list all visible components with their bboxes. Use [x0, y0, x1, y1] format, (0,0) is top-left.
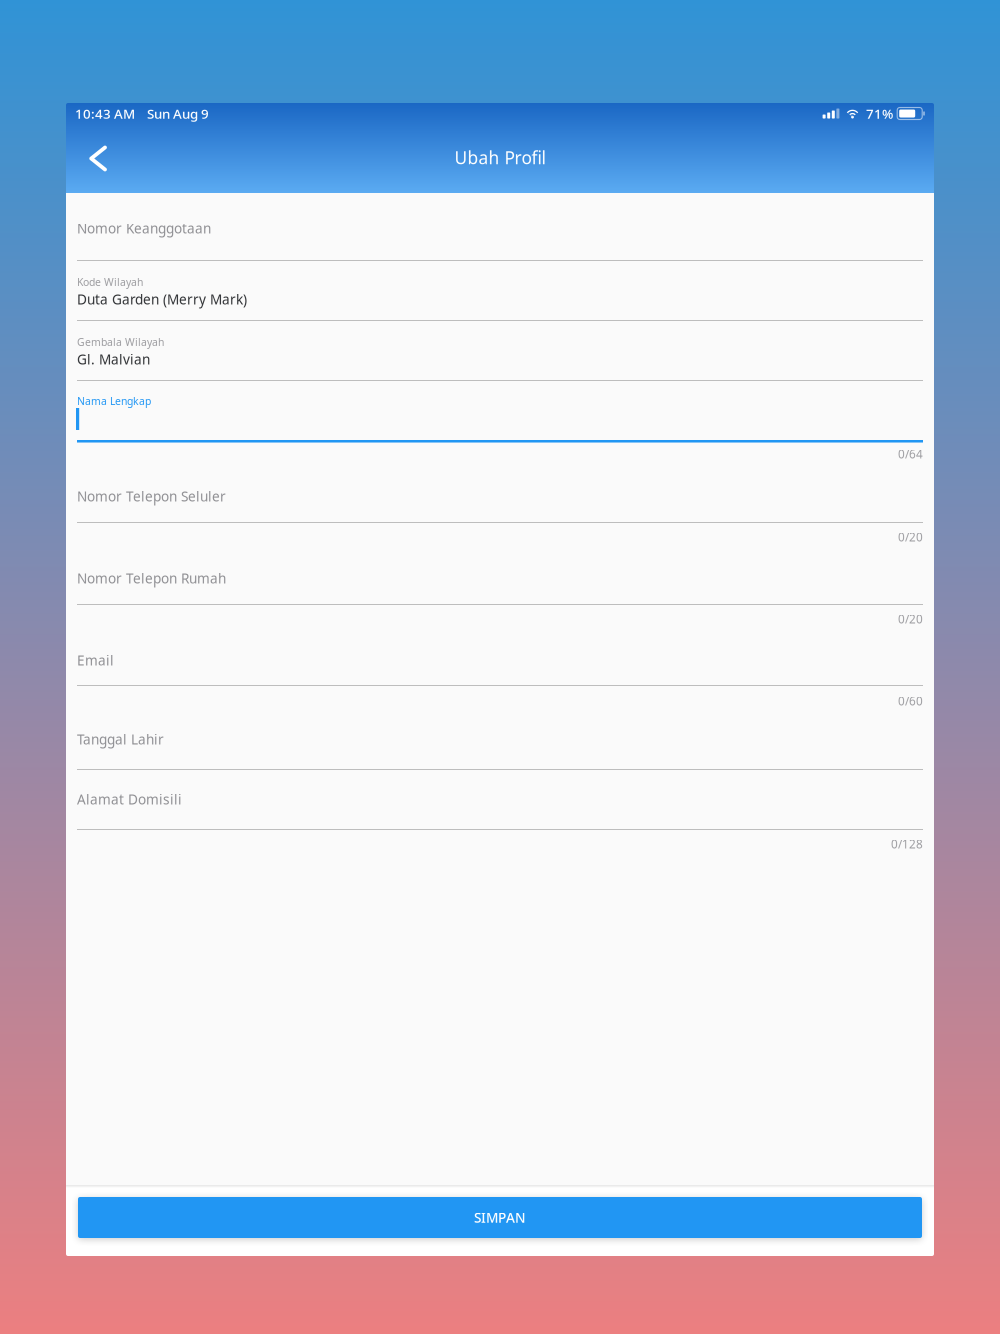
staticText: Nomor Telepon Rumah	[77, 569, 226, 587]
button[interactable]: Nomor Telepon Seluler	[66, 463, 934, 545]
staticText: 0/20	[898, 611, 923, 627]
button[interactable]: SIMPAN	[78, 1197, 922, 1238]
staticText: Email	[77, 651, 114, 669]
staticText: SIMPAN	[474, 1208, 526, 1227]
button[interactable]: Nomor Keanggotaan	[66, 193, 934, 270]
staticText: 10:43 AM	[75, 104, 135, 123]
staticText: 0/64	[898, 446, 923, 462]
staticText: Duta Garden (Merry Mark)	[77, 290, 247, 308]
staticText: 0/128	[891, 836, 923, 852]
button[interactable]: Kode Wilayah	[66, 270, 934, 330]
staticText: Gembala Wilayah	[77, 335, 164, 349]
staticText: Nama Lengkap	[77, 394, 151, 408]
staticText: 0/20	[898, 529, 923, 545]
button[interactable]: Tanggal Lahir	[66, 710, 934, 770]
staticText: Sun Aug 9	[147, 104, 209, 123]
button[interactable]: Alamat Domisili	[66, 770, 934, 830]
staticText: Ubah Profil	[454, 146, 545, 169]
button[interactable]: Back	[66, 132, 124, 188]
staticText: Nomor Telepon Seluler	[77, 487, 226, 505]
staticText: Alamat Domisili	[77, 790, 182, 808]
button[interactable]: Nama Lengkap	[66, 390, 934, 463]
button[interactable]: Email	[66, 627, 934, 710]
staticText: Tanggal Lahir	[77, 730, 164, 748]
staticText: 71%	[866, 104, 893, 123]
button[interactable]: Gembala Wilayah	[66, 330, 934, 390]
staticText: Gl. Malvian	[77, 350, 150, 368]
staticText: Kode Wilayah	[77, 275, 143, 289]
staticText: 0/60	[898, 693, 923, 709]
button[interactable]: Nomor Telepon Rumah	[66, 545, 934, 627]
staticText: Nomor Keanggotaan	[77, 219, 211, 237]
